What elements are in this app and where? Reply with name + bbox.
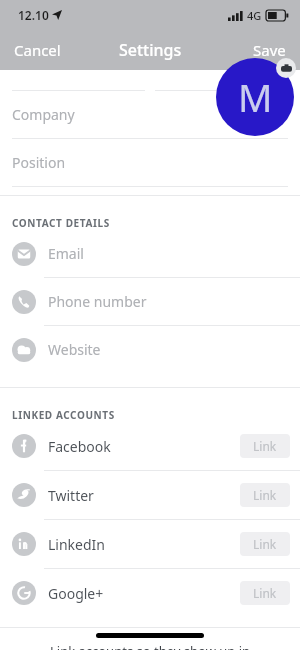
button[interactable]: Cancel bbox=[0, 30, 75, 70]
staticText: Cancel bbox=[14, 40, 61, 60]
button[interactable]: Change photo bbox=[276, 58, 296, 78]
staticText: CONTACT DETAILS bbox=[12, 216, 110, 230]
staticText: Link accounts so they show up in your pr… bbox=[42, 642, 258, 650]
staticText: Position bbox=[12, 153, 66, 172]
staticText: Phone number bbox=[48, 292, 147, 311]
staticText: LinkedIn bbox=[48, 535, 105, 554]
staticText: Settings bbox=[119, 39, 182, 61]
button[interactable]: Website bbox=[0, 326, 300, 373]
staticText: Save bbox=[253, 40, 286, 60]
staticText: Facebook bbox=[48, 437, 111, 456]
button[interactable]: Company bbox=[0, 91, 300, 139]
staticText: M bbox=[238, 71, 273, 123]
staticText: Email bbox=[48, 244, 84, 263]
button[interactable]: LinkedIn bbox=[0, 520, 300, 568]
button[interactable]: Email bbox=[0, 230, 300, 278]
staticText: Link bbox=[253, 585, 277, 601]
staticText: LINKED ACCOUNTS bbox=[12, 408, 115, 422]
staticText: 12.10 bbox=[18, 7, 49, 23]
staticText: 4G bbox=[247, 8, 262, 23]
staticText: Link bbox=[253, 438, 277, 454]
staticText: Link bbox=[253, 487, 277, 503]
staticText: Twitter bbox=[48, 486, 94, 505]
staticText: Company bbox=[12, 105, 75, 124]
button[interactable]: Link bbox=[240, 581, 290, 605]
button[interactable]: Link bbox=[240, 434, 290, 458]
staticText: Google+ bbox=[48, 584, 104, 603]
button[interactable]: Save bbox=[239, 30, 300, 70]
button[interactable]: Phone number bbox=[0, 278, 300, 326]
button[interactable]: Google+ bbox=[0, 569, 300, 617]
button[interactable]: Link bbox=[240, 483, 290, 507]
button[interactable]: Link bbox=[240, 532, 290, 556]
staticText: Website bbox=[48, 340, 101, 359]
button[interactable]: Twitter bbox=[0, 471, 300, 519]
button[interactable]: Position bbox=[0, 139, 300, 187]
staticText: Link bbox=[253, 536, 277, 552]
button[interactable]: Facebook bbox=[0, 422, 300, 470]
button[interactable]: Profile photo bbox=[216, 58, 294, 136]
